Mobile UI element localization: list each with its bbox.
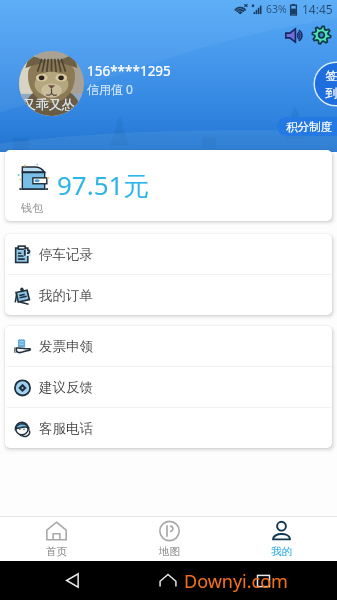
button[interactable]: 积分制度 — [277, 117, 337, 136]
staticText: 签到 — [325, 68, 337, 100]
staticText: 积分制度 — [286, 120, 332, 134]
staticText: 首页 — [46, 545, 67, 558]
staticText: 停车记录 — [39, 246, 93, 263]
staticText: 地图 — [159, 545, 180, 558]
button[interactable]: 停车记录 — [5, 234, 332, 274]
button[interactable]: 我的 — [225, 517, 337, 561]
staticText: 14:45 — [302, 1, 333, 17]
button[interactable]: Back — [65, 573, 81, 588]
staticText: Downyi.com — [184, 569, 288, 594]
button[interactable]: Recent apps — [256, 574, 271, 588]
staticText: 156****1295 — [87, 62, 171, 80]
button[interactable]: 钱包 — [5, 150, 332, 221]
staticText: 建议反馈 — [39, 379, 93, 396]
button[interactable]: Profile photo — [19, 51, 84, 116]
button[interactable]: 发票申领 — [5, 326, 332, 366]
staticText: 发票申领 — [39, 338, 93, 355]
staticText: 我的 — [271, 545, 292, 558]
staticText: 97.51元 — [57, 167, 150, 203]
button[interactable]: 地图 — [113, 517, 225, 561]
staticText: 客服电话 — [39, 420, 93, 437]
staticText: 63% — [266, 2, 287, 16]
button[interactable]: 我的订单 — [5, 275, 332, 315]
button[interactable]: Settings — [312, 26, 331, 44]
button[interactable]: 签到 — [313, 61, 337, 107]
staticText: 又乖又怂 — [23, 96, 75, 112]
button[interactable]: 客服电话 — [5, 408, 332, 448]
staticText: 信用值 0 — [87, 81, 133, 97]
button[interactable]: 首页 — [0, 517, 113, 561]
button[interactable]: 建议反馈 — [5, 367, 332, 407]
button[interactable]: Home — [159, 573, 177, 588]
staticText: 钱包 — [21, 201, 43, 215]
button[interactable]: Announcements — [285, 28, 305, 43]
staticText: 我的订单 — [39, 287, 93, 304]
